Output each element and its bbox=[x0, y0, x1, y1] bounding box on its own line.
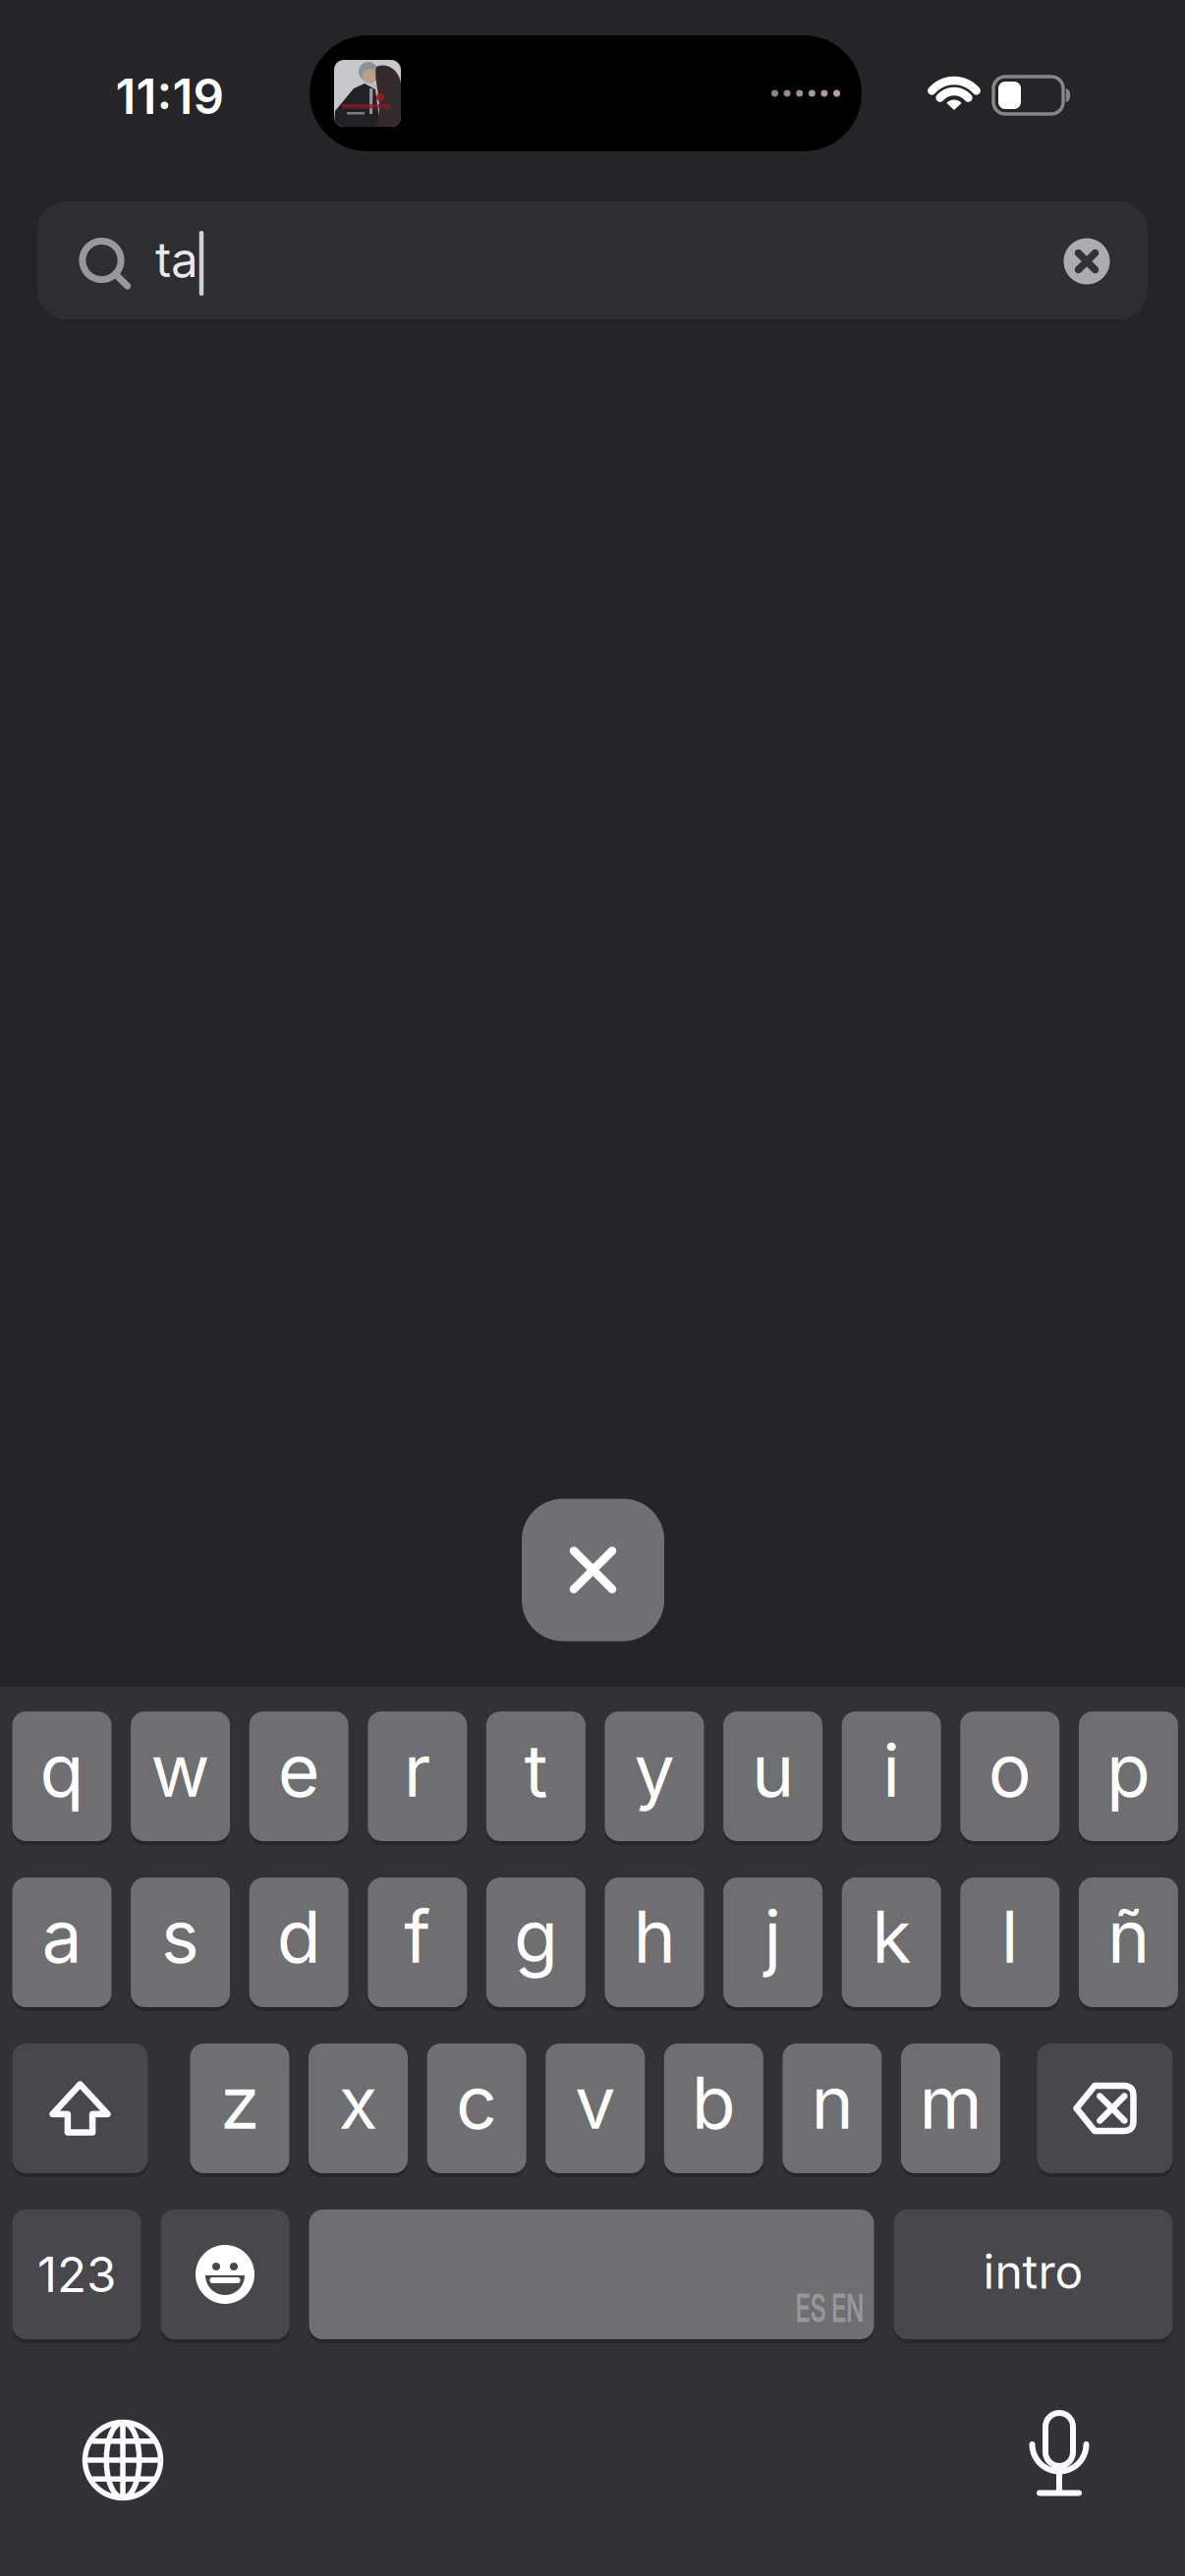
button[interactable]: Next keyboard bbox=[85, 2422, 161, 2498]
staticText: 11:19 bbox=[115, 67, 225, 126]
staticText: 123 bbox=[37, 2245, 116, 2304]
button[interactable]: z bbox=[190, 2044, 289, 2173]
staticText: intro bbox=[983, 2243, 1083, 2300]
staticText: e bbox=[278, 1727, 320, 1814]
staticText: k bbox=[872, 1893, 911, 1980]
staticText: w bbox=[151, 1727, 210, 1814]
button[interactable]: t bbox=[486, 1711, 586, 1841]
button[interactable]: w bbox=[131, 1711, 230, 1841]
button[interactable]: a bbox=[12, 1877, 112, 2007]
staticText: j bbox=[764, 1893, 782, 1980]
staticText: p bbox=[1106, 1727, 1151, 1814]
button[interactable]: x bbox=[309, 2044, 408, 2173]
staticText: s bbox=[161, 1893, 200, 1980]
staticText: h bbox=[633, 1893, 676, 1980]
staticText: ta bbox=[155, 230, 198, 289]
button[interactable]: s bbox=[131, 1877, 230, 2007]
staticText: f bbox=[404, 1893, 431, 1980]
staticText: d bbox=[277, 1893, 321, 1980]
button[interactable]: k bbox=[842, 1877, 941, 2007]
button[interactable]: c bbox=[427, 2044, 526, 2173]
staticText: n bbox=[811, 2059, 853, 2146]
button[interactable]: h bbox=[605, 1877, 704, 2007]
button[interactable]: Clear text bbox=[1064, 238, 1110, 284]
staticText: b bbox=[692, 2059, 736, 2146]
staticText: i bbox=[883, 1727, 900, 1814]
button[interactable]: y bbox=[605, 1711, 704, 1841]
button[interactable]: p bbox=[1079, 1711, 1178, 1841]
staticText: g bbox=[514, 1893, 558, 1980]
button[interactable]: e bbox=[249, 1711, 349, 1841]
button[interactable]: Dictation bbox=[1032, 2413, 1087, 2497]
staticText: u bbox=[752, 1727, 794, 1814]
button[interactable]: Shift bbox=[12, 2044, 148, 2173]
button[interactable]: v bbox=[546, 2044, 645, 2173]
staticText: ES EN bbox=[775, 2284, 885, 2332]
button[interactable]: intro bbox=[894, 2210, 1173, 2339]
button[interactable]: Space bbox=[309, 2210, 874, 2339]
button[interactable]: f bbox=[368, 1877, 467, 2007]
button[interactable]: b bbox=[664, 2044, 763, 2173]
staticText: c bbox=[456, 2059, 497, 2146]
staticText: x bbox=[339, 2059, 378, 2146]
staticText: r bbox=[404, 1727, 431, 1814]
button[interactable]: ñ bbox=[1079, 1877, 1178, 2007]
button[interactable]: i bbox=[842, 1711, 941, 1841]
staticText: m bbox=[919, 2059, 982, 2146]
button[interactable]: Search bbox=[37, 201, 1148, 319]
staticText: a bbox=[42, 1893, 82, 1980]
staticText: v bbox=[575, 2059, 615, 2146]
button[interactable]: Dismiss keyboard bbox=[522, 1499, 664, 1641]
button[interactable]: o bbox=[960, 1711, 1060, 1841]
button[interactable]: g bbox=[486, 1877, 586, 2007]
button[interactable]: Now Playing bbox=[310, 35, 862, 151]
staticText: z bbox=[220, 2059, 259, 2146]
staticText: l bbox=[1001, 1893, 1019, 1980]
button[interactable]: 123 bbox=[12, 2210, 141, 2339]
button[interactable]: l bbox=[960, 1877, 1060, 2007]
button[interactable]: j bbox=[723, 1877, 823, 2007]
staticText: ñ bbox=[1107, 1893, 1150, 1980]
button[interactable]: Delete bbox=[1037, 2044, 1173, 2173]
button[interactable]: Emoji bbox=[161, 2210, 289, 2339]
staticText: t bbox=[524, 1727, 548, 1814]
button[interactable]: n bbox=[783, 2044, 882, 2173]
button[interactable]: r bbox=[368, 1711, 467, 1841]
button[interactable]: m bbox=[901, 2044, 1000, 2173]
button[interactable]: d bbox=[249, 1877, 349, 2007]
button[interactable]: q bbox=[12, 1711, 112, 1841]
staticText: y bbox=[634, 1727, 675, 1814]
staticText: q bbox=[40, 1727, 84, 1814]
staticText: o bbox=[988, 1727, 1032, 1814]
button[interactable]: u bbox=[723, 1711, 823, 1841]
